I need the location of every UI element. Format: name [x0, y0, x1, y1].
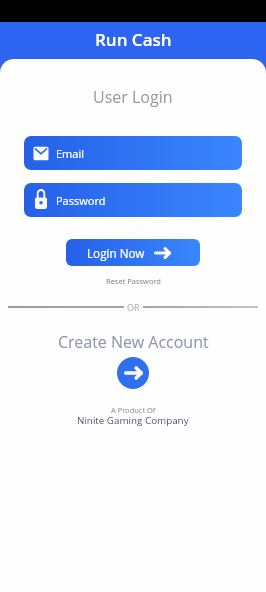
staticText: Login Now	[87, 245, 145, 261]
staticText: A Product Of	[111, 405, 156, 415]
staticText: Ninite Gaming Company	[77, 414, 189, 427]
button[interactable]: Reset Password	[106, 276, 161, 286]
staticText: Password	[56, 193, 106, 208]
button[interactable]: Login Now	[66, 239, 200, 266]
staticText: Email	[56, 146, 85, 161]
staticText: OR	[127, 301, 140, 313]
button[interactable]: Password	[24, 183, 242, 217]
button[interactable]: Email	[24, 136, 242, 170]
staticText: Run Cash	[95, 28, 172, 51]
button[interactable]: Create New Account	[117, 357, 149, 389]
button[interactable]: Create New Account	[58, 331, 209, 353]
staticText: User Login	[93, 86, 173, 108]
